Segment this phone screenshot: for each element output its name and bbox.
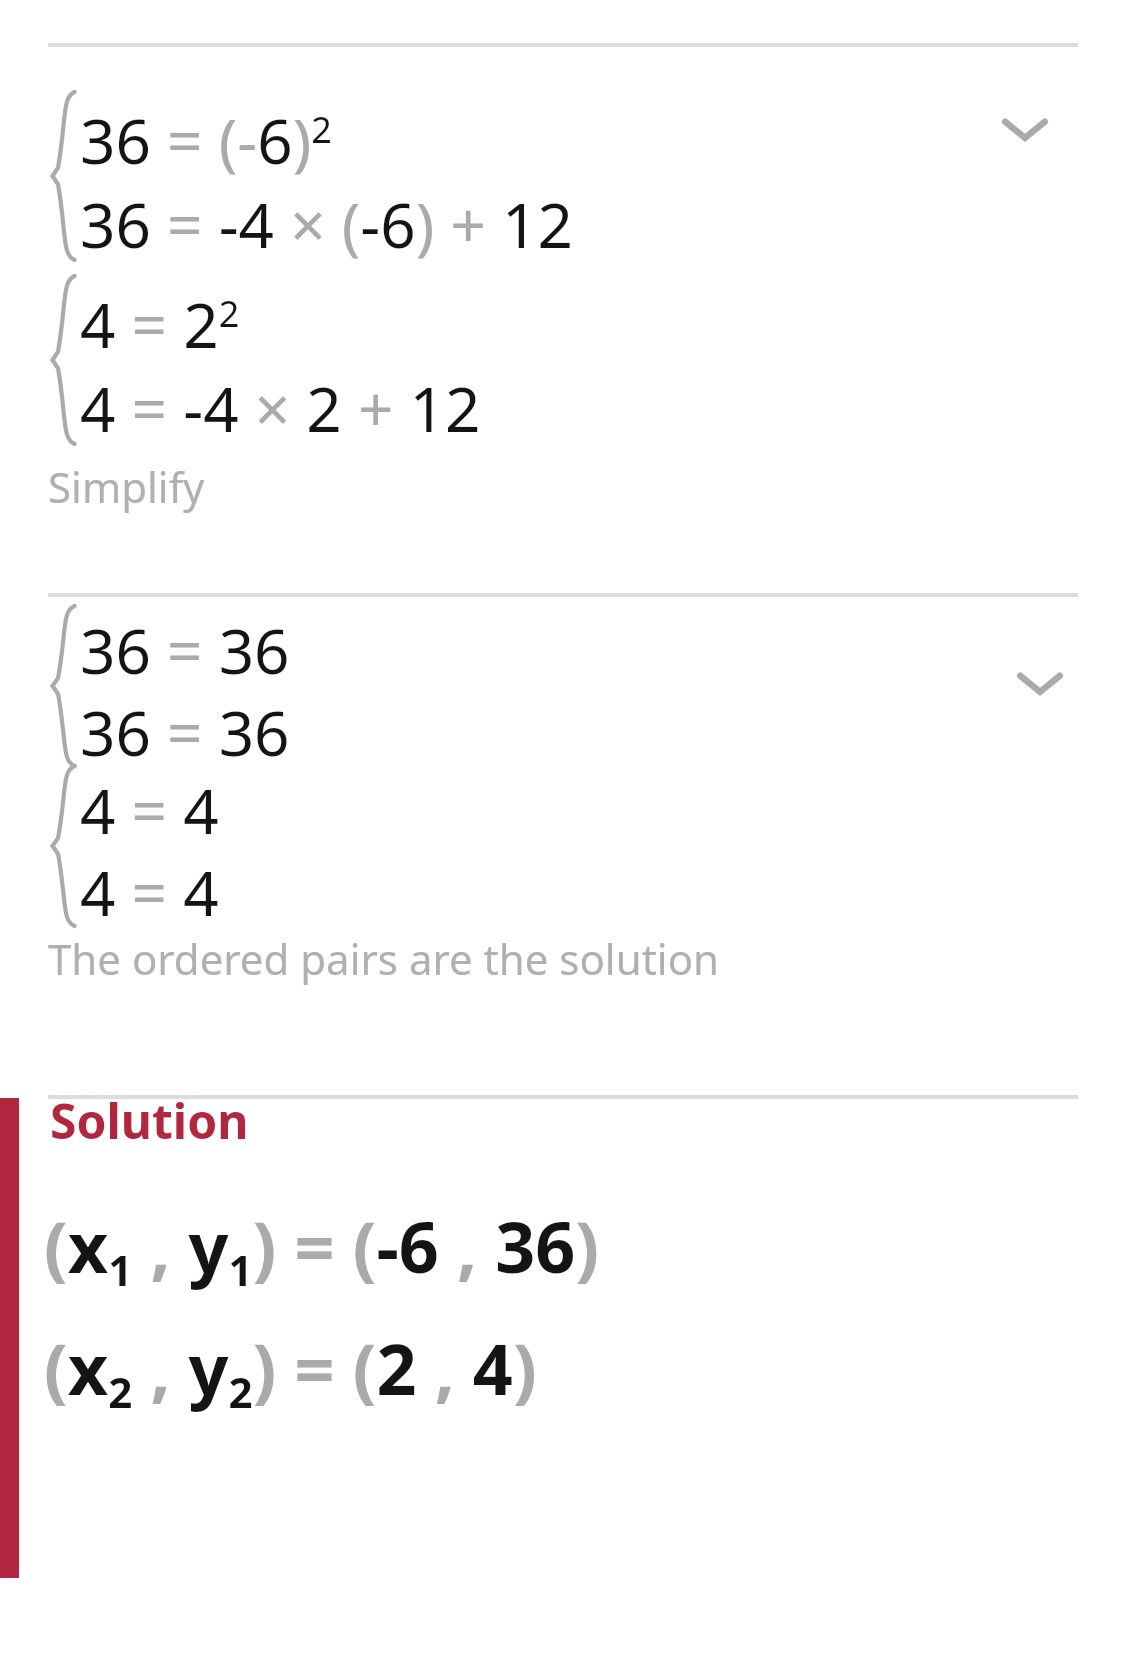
button[interactable]: Expand step — [980, 83, 1070, 173]
staticText: 36 = (-6)2 — [80, 98, 332, 182]
staticText: 4 = 4 — [80, 850, 219, 934]
staticText: The ordered pairs are the solution — [48, 930, 719, 987]
button[interactable]: Expand step — [995, 637, 1085, 727]
staticText: (x1 , y1) = (-6 , 36) — [44, 1198, 600, 1299]
staticText: 4 = 22 — [80, 282, 240, 366]
staticText: 36 = -4 × (-6) + 12 — [80, 182, 574, 266]
staticText: 4 = -4 × 2 + 12 — [80, 366, 481, 450]
staticText: 4 = 4 — [80, 768, 219, 852]
button[interactable]: Solution — [50, 1088, 249, 1153]
staticText: Simplify — [48, 458, 205, 515]
staticText: (x2 , y2) = (2 , 4) — [44, 1320, 537, 1421]
staticText: 36 = 36 — [80, 690, 290, 774]
staticText: Solution — [50, 1088, 249, 1153]
staticText: 36 = 36 — [80, 608, 290, 692]
